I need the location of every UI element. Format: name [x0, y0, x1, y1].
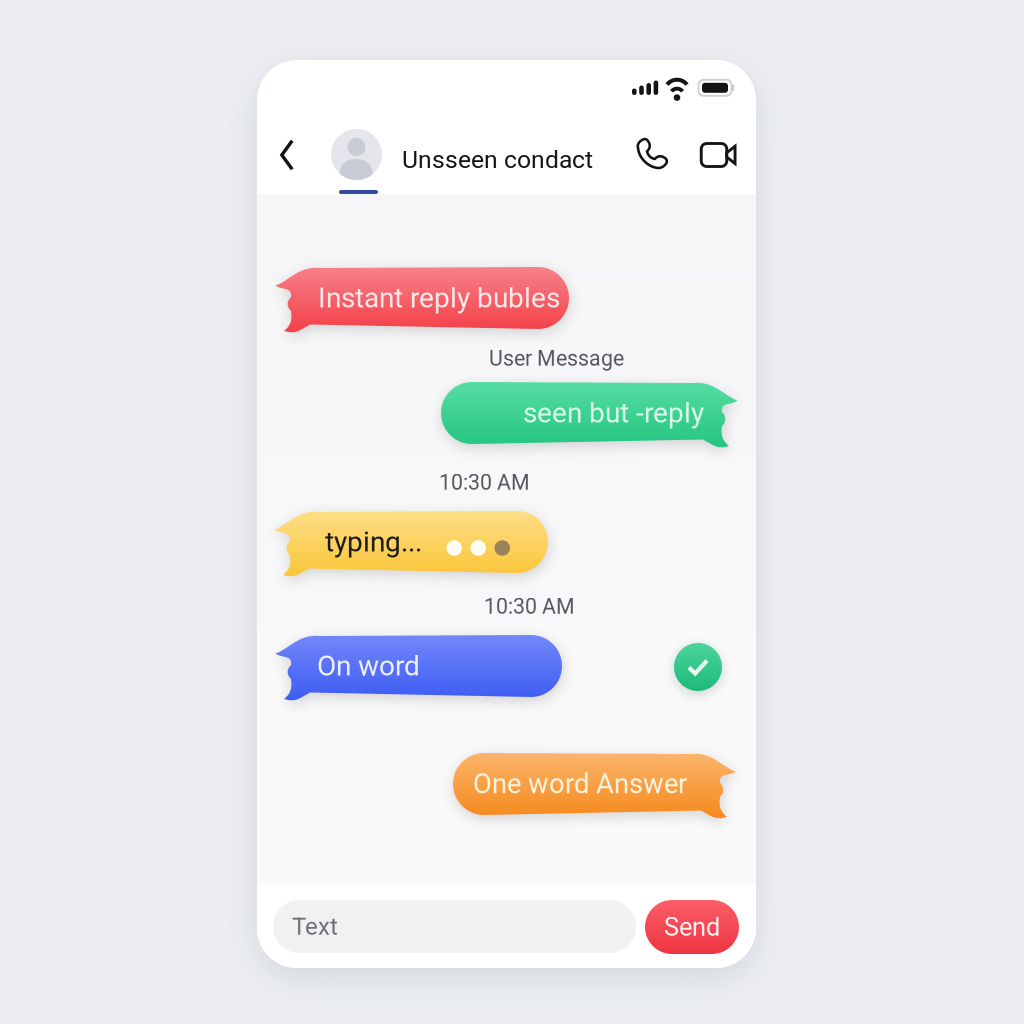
- staticText: typing...: [325, 526, 422, 558]
- staticText: Instant reply bubles: [318, 282, 560, 314]
- button[interactable]: Video call: [692, 133, 736, 177]
- button[interactable]: Send: [645, 900, 739, 954]
- staticText: 10:30 AM: [439, 470, 530, 495]
- staticText: On word: [317, 650, 420, 682]
- button[interactable]: Back: [264, 128, 310, 182]
- staticText: Unsseen condact: [402, 145, 593, 174]
- staticText: 10:30 AM: [484, 594, 575, 619]
- button[interactable]: Voice call: [630, 132, 674, 176]
- staticText: One word Answer: [473, 768, 687, 800]
- staticText: Send: [664, 912, 720, 942]
- staticText: seen but -reply: [523, 397, 704, 429]
- staticText: User Message: [489, 346, 624, 371]
- staticText: Text: [292, 912, 338, 940]
